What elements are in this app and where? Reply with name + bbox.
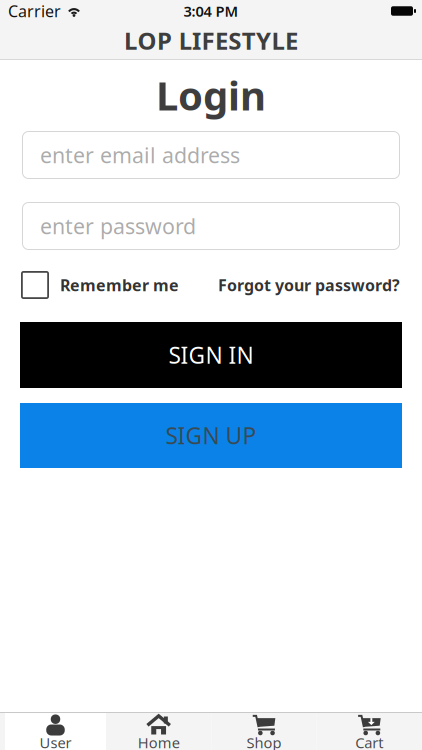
staticText: LOP LIFESTYLE — [124, 25, 298, 56]
staticText: enter password — [40, 212, 196, 240]
button[interactable]: Remember me — [21, 271, 179, 299]
button[interactable]: Home — [106, 713, 211, 750]
staticText: enter email address — [40, 141, 240, 169]
staticText: Cart — [355, 733, 383, 750]
button[interactable]: User — [5, 713, 106, 750]
staticText: Forgot your password? — [218, 274, 400, 296]
staticText: Home — [138, 733, 180, 750]
staticText: Remember me — [60, 274, 179, 296]
button[interactable]: Shop — [211, 713, 317, 750]
staticText: User — [39, 733, 71, 750]
button[interactable]: Cart — [317, 713, 422, 750]
staticText: 3:04 PM — [183, 1, 238, 21]
button[interactable]: SIGN IN — [20, 322, 402, 388]
button[interactable]: enter password — [22, 202, 400, 250]
staticText: Carrier — [8, 0, 61, 22]
staticText: Shop — [246, 733, 281, 750]
button[interactable]: Forgot your password? — [218, 274, 400, 296]
staticText: SIGN UP — [165, 420, 256, 450]
button[interactable]: SIGN UP — [20, 403, 402, 468]
staticText: Login — [156, 68, 266, 121]
button[interactable]: enter email address — [22, 131, 400, 179]
staticText: SIGN IN — [168, 340, 253, 370]
